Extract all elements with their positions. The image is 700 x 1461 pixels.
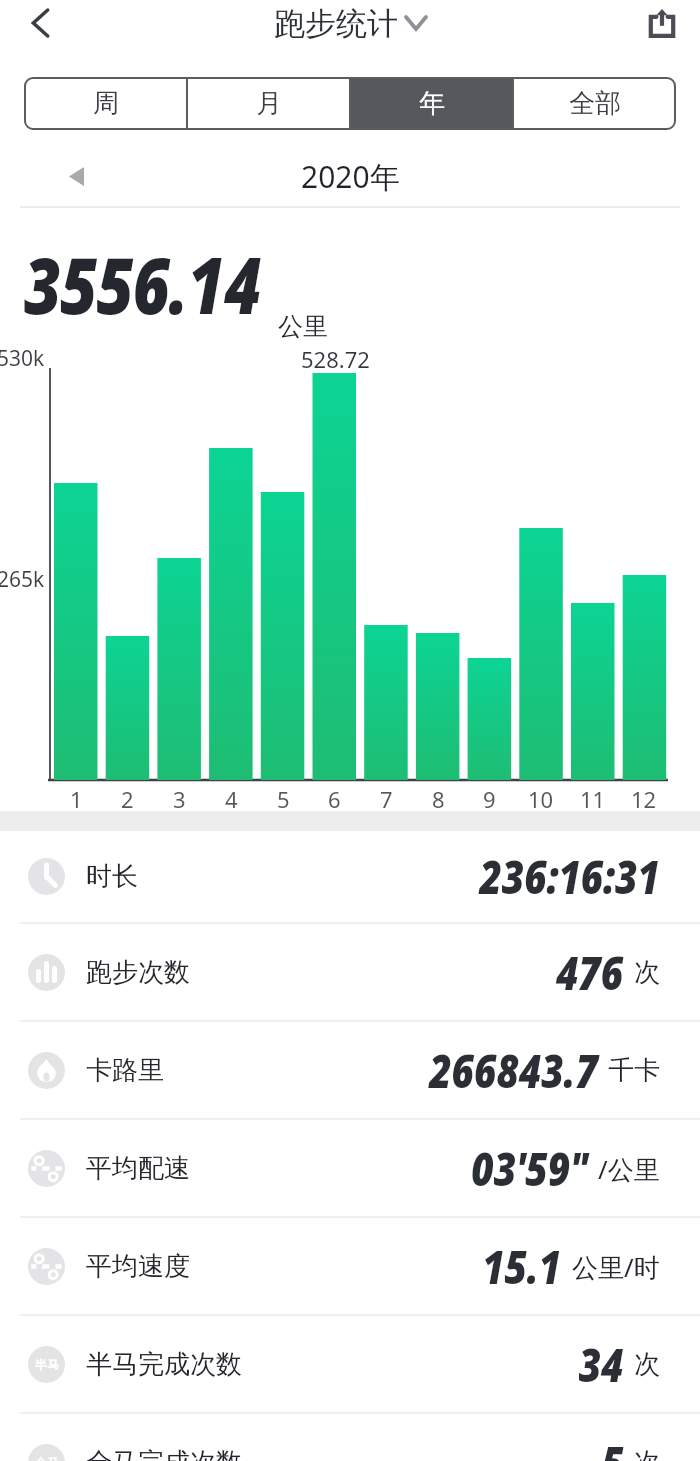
button[interactable] [16, 0, 66, 46]
staticText: 全马完成次数 [86, 1446, 242, 1461]
button[interactable]: 平均配速 [0, 1120, 700, 1216]
staticText: 530k [0, 344, 45, 373]
staticText: 266843.7 [429, 1039, 598, 1102]
button[interactable]: 月 [187, 77, 350, 130]
staticText: 月 [256, 87, 282, 120]
staticText: 公里 [278, 311, 328, 342]
button[interactable]: 卡路里 [0, 1022, 700, 1118]
staticText: 全马 [35, 1455, 59, 1461]
staticText: /公里 [598, 1151, 660, 1187]
staticText: 10 [528, 784, 554, 814]
staticText: 6 [328, 784, 341, 814]
staticText: 全部 [569, 87, 621, 120]
staticText: 公里/时 [572, 1249, 660, 1285]
staticText: 236:16:31 [479, 845, 660, 908]
button[interactable]: 全部 [513, 77, 676, 130]
staticText: 5 [601, 1431, 624, 1461]
staticText: 周 [93, 87, 119, 120]
button[interactable] [56, 148, 96, 204]
staticText: 半马完成次数 [86, 1348, 242, 1381]
button[interactable] [636, 0, 688, 46]
staticText: 12 [631, 784, 657, 814]
staticText: 3 [173, 784, 186, 814]
staticText: 次 [634, 1348, 660, 1381]
staticText: 次 [634, 956, 660, 989]
staticText: 3556.14 [24, 231, 261, 337]
staticText: 9 [483, 784, 496, 814]
staticText: 5 [277, 784, 290, 814]
button[interactable]: 跑步统计 [274, 0, 426, 46]
staticText: 528.72 [301, 344, 370, 374]
button[interactable]: 全马 [0, 1414, 700, 1461]
button[interactable]: 年 [350, 77, 513, 130]
staticText: 2 [121, 784, 134, 814]
staticText: 11 [580, 784, 606, 814]
staticText: 跑步次数 [86, 956, 190, 989]
staticText: 时长 [86, 860, 138, 893]
staticText: 8 [432, 784, 445, 814]
staticText: 34 [579, 1333, 624, 1396]
staticText: 15.1 [482, 1235, 562, 1298]
staticText: 1 [70, 784, 83, 814]
staticText: 年 [419, 87, 445, 120]
staticText: 2020年 [301, 156, 400, 197]
button[interactable]: 平均速度 [0, 1218, 700, 1314]
button[interactable]: 跑步次数 [0, 924, 700, 1020]
staticText: 476 [556, 941, 624, 1004]
staticText: 7 [380, 784, 393, 814]
staticText: 03'59" [471, 1137, 588, 1200]
staticText: 卡路里 [86, 1054, 164, 1087]
button[interactable]: 半马 [0, 1316, 700, 1412]
staticText: 半马 [35, 1357, 59, 1372]
staticText: 平均配速 [86, 1152, 190, 1185]
staticText: 跑步统计 [274, 4, 398, 43]
staticText: 平均速度 [86, 1250, 190, 1283]
button[interactable]: 时长 [0, 831, 700, 922]
staticText: 4 [225, 784, 238, 814]
staticText: 次 [634, 1446, 660, 1461]
button[interactable]: 周 [24, 77, 187, 130]
staticText: 265k [0, 565, 45, 594]
staticText: 千卡 [608, 1054, 660, 1087]
